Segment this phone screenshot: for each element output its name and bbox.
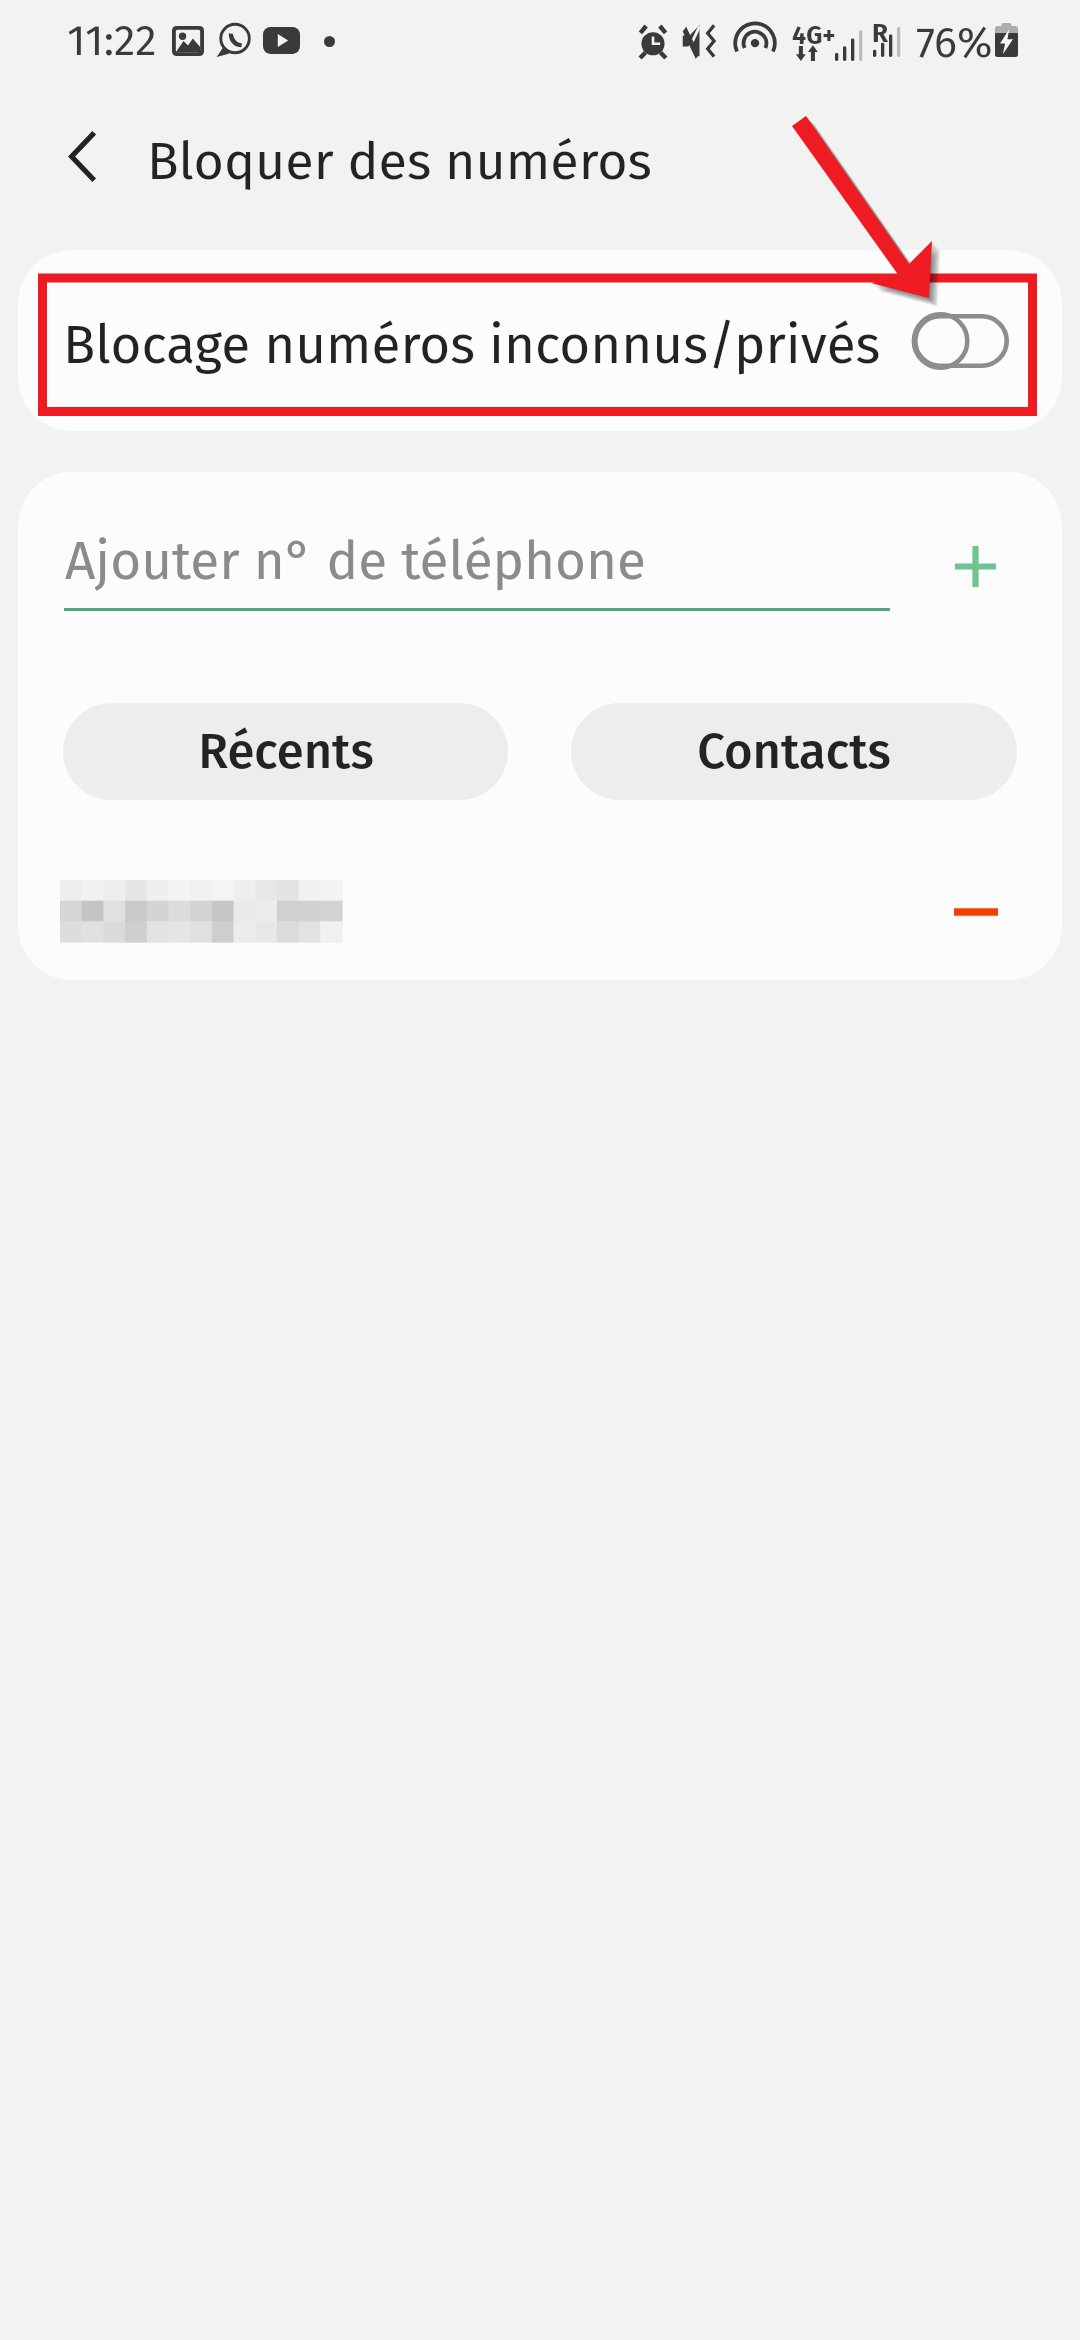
staticText: 4G+ [792,21,836,51]
button[interactable]: Blocage numéros inconnus/privés [18,250,1062,431]
staticText: 11:22 [67,15,157,67]
staticText: Bloquer des numéros [147,130,652,192]
button[interactable]: Blocked number [38,854,898,966]
button[interactable]: Contacts [571,703,1017,800]
button[interactable]: Récents [63,703,508,800]
staticText: R [872,18,889,49]
staticText: Blocage numéros inconnus/privés [63,313,881,377]
button[interactable]: Back [42,116,122,196]
staticText: Ajouter n° de téléphone [65,529,646,593]
button[interactable]: Add phone number [920,511,1030,621]
button[interactable]: Remove number [921,870,1031,954]
button[interactable]: Ajouter n° de téléphone [63,508,891,612]
staticText: Récents [198,722,374,781]
button[interactable]: Block unknown/private numbers, off [903,301,1020,379]
staticText: 76% [916,17,993,69]
staticText: Contacts [697,722,891,781]
